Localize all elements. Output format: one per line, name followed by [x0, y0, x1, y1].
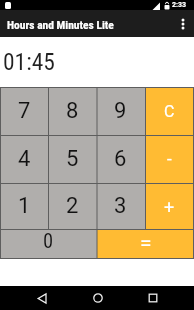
staticText: 2 — [66, 193, 79, 219]
button[interactable]: + — [145, 183, 194, 229]
button[interactable]: 1 — [0, 183, 48, 229]
staticText: = — [140, 231, 152, 256]
staticText: 4 — [18, 146, 31, 172]
button[interactable]: - — [145, 135, 194, 183]
staticText: 1 — [18, 193, 31, 219]
button[interactable]: 7 — [0, 87, 48, 135]
staticText: 7 — [18, 98, 31, 124]
button[interactable]: 0 — [0, 229, 97, 259]
button[interactable]: 4 — [0, 135, 48, 183]
button[interactable] — [172, 10, 194, 37]
button[interactable]: 8 — [48, 87, 96, 135]
staticText: 6 — [114, 146, 127, 172]
button[interactable]: 5 — [48, 135, 96, 183]
button[interactable] — [70, 286, 125, 310]
button[interactable] — [125, 286, 180, 310]
staticText: - — [167, 149, 172, 169]
staticText: Hours and Minutes Lite — [7, 18, 114, 31]
staticText: + — [164, 196, 175, 217]
button[interactable]: 9 — [96, 87, 145, 135]
button[interactable]: = — [97, 229, 194, 259]
button[interactable] — [15, 286, 70, 310]
staticText: 2:33 — [172, 1, 187, 9]
staticText: 0 — [43, 229, 54, 253]
staticText: 5 — [66, 146, 79, 172]
staticText: 01:45 — [3, 48, 55, 76]
staticText: 3 — [114, 193, 127, 219]
staticText: 9 — [114, 98, 127, 124]
staticText: C — [164, 102, 175, 121]
button[interactable]: 6 — [96, 135, 145, 183]
staticText: 8 — [66, 98, 79, 124]
button[interactable]: 3 — [96, 183, 145, 229]
button[interactable]: 2 — [48, 183, 96, 229]
button[interactable]: C — [145, 87, 194, 135]
